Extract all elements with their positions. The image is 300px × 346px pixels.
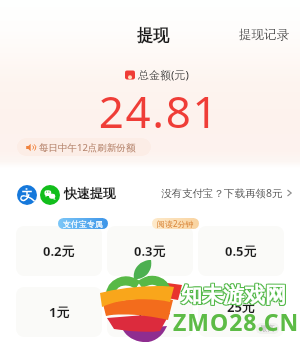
button[interactable]: 0.2元	[16, 226, 102, 276]
staticText: 阅读2分钟	[157, 218, 194, 229]
staticText: 提现	[137, 26, 169, 46]
staticText: 知未游戏网	[180, 281, 285, 307]
button[interactable]: 0.3元	[107, 226, 193, 276]
staticText: 总金额(元)	[138, 67, 189, 82]
staticText: 每日中午12点刷新份额	[39, 141, 136, 154]
staticText: 快速提现	[64, 185, 116, 201]
staticText: 没有支付宝？下载再领8元	[161, 186, 283, 200]
staticText: 知未游戏网	[181, 282, 286, 308]
other: WeChat	[40, 185, 60, 205]
button[interactable]: 10元	[107, 287, 193, 337]
staticText: 提现记录	[239, 27, 289, 43]
staticText: 最高	[260, 324, 275, 333]
staticText: 知未游戏网	[182, 282, 287, 308]
other: Alipay	[17, 185, 37, 205]
staticText: 知未游戏网	[180, 283, 285, 309]
button[interactable]: 0.5元	[198, 226, 284, 276]
staticText: 支付宝专属	[63, 219, 103, 229]
staticText: 24.81	[9, 81, 300, 141]
staticText: 1元	[49, 303, 70, 321]
button[interactable]: 每日中午12点刷新份额	[17, 138, 151, 156]
staticText: 知未游戏网	[182, 283, 287, 309]
staticText: 知未游戏网	[182, 281, 287, 307]
staticText: 知未游戏网	[181, 281, 286, 307]
staticText: 知未游戏网	[180, 282, 285, 308]
staticText: 0.5元	[225, 242, 257, 260]
button[interactable]: 提现记录	[231, 21, 297, 49]
staticText: 知未游戏网	[181, 283, 286, 309]
staticText: 0.2元	[43, 242, 75, 260]
staticText: 0.3元	[134, 242, 166, 260]
staticText: 10元	[136, 303, 164, 321]
staticText: 25元	[227, 298, 255, 316]
button[interactable]: 1元	[16, 287, 102, 337]
button[interactable]: 没有支付宝？下载再领8元	[157, 182, 296, 204]
staticText: ZMO28.CN	[173, 306, 300, 337]
button[interactable]: 25元	[198, 287, 284, 337]
